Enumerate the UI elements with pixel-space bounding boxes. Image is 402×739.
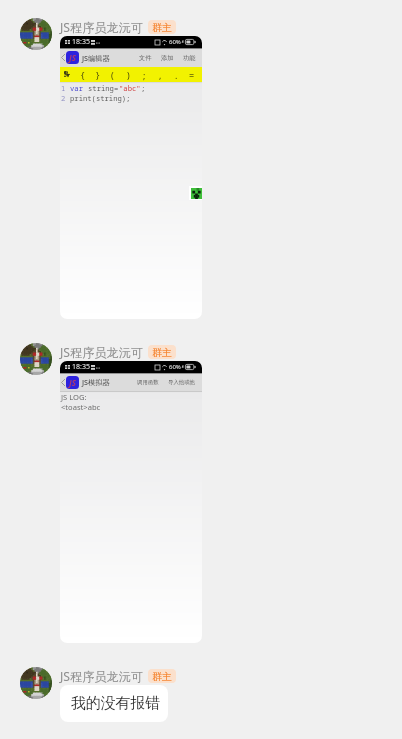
button[interactable]: Avatar: [20, 667, 52, 699]
staticText: 导入他或他: [168, 379, 195, 386]
button[interactable]: .: [168, 67, 184, 82]
staticText: 调用函数: [137, 379, 159, 386]
staticText: 我的没有报错: [71, 694, 160, 713]
staticText: print(string);: [70, 93, 131, 103]
staticText: 功能: [183, 54, 196, 62]
staticText: 2: [61, 93, 70, 103]
button[interactable]: Avatar: [20, 18, 52, 50]
staticText: 群主: [152, 670, 172, 683]
staticText: 1: [61, 83, 70, 93]
staticText: JS程序员龙沅可: [60, 344, 144, 361]
button[interactable]: 18:35: [60, 361, 202, 643]
staticText: string=: [88, 83, 119, 93]
staticText: ,: [159, 69, 162, 81]
staticText: 18:35: [72, 362, 90, 372]
staticText: JS: [69, 377, 76, 388]
staticText: ): [127, 69, 130, 81]
staticText: =: [189, 69, 195, 81]
button[interactable]: }: [90, 67, 105, 82]
button[interactable]: ): [120, 67, 136, 82]
staticText: <toast>abc: [61, 402, 101, 412]
staticText: "abc": [119, 83, 141, 93]
other: Input method: [64, 71, 70, 78]
button[interactable]: {: [75, 67, 90, 82]
button[interactable]: ,: [152, 67, 168, 82]
other: Back: [61, 54, 65, 61]
staticText: JS模拟器: [82, 377, 110, 387]
staticText: }: [96, 69, 100, 81]
button[interactable]: (: [105, 67, 120, 82]
staticText: 60%: [169, 38, 181, 46]
staticText: .: [175, 69, 178, 81]
staticText: {: [81, 69, 85, 81]
button[interactable]: Avatar: [20, 343, 52, 375]
staticText: 文件: [139, 54, 152, 62]
staticText: 群主: [152, 346, 172, 359]
staticText: (: [111, 69, 114, 81]
staticText: JS程序员龙沅可: [60, 668, 144, 685]
staticText: var: [70, 83, 88, 93]
staticText: 群主: [152, 21, 172, 34]
button[interactable]: 18:35: [60, 36, 202, 319]
staticText: JS程序员龙沅可: [60, 19, 144, 36]
button[interactable]: =: [184, 67, 200, 82]
staticText: ;: [141, 83, 146, 93]
staticText: JS: [69, 52, 76, 63]
button[interactable]: ;: [136, 67, 152, 82]
other: Back: [61, 379, 65, 386]
staticText: JS编辑器: [82, 53, 110, 63]
staticText: ;: [143, 69, 146, 81]
staticText: 添加: [161, 54, 174, 62]
staticText: JS LOG:: [61, 392, 87, 402]
staticText: 60%: [169, 363, 181, 371]
staticText: 18:35: [72, 37, 90, 47]
button[interactable]: 我的没有报错: [60, 685, 168, 722]
